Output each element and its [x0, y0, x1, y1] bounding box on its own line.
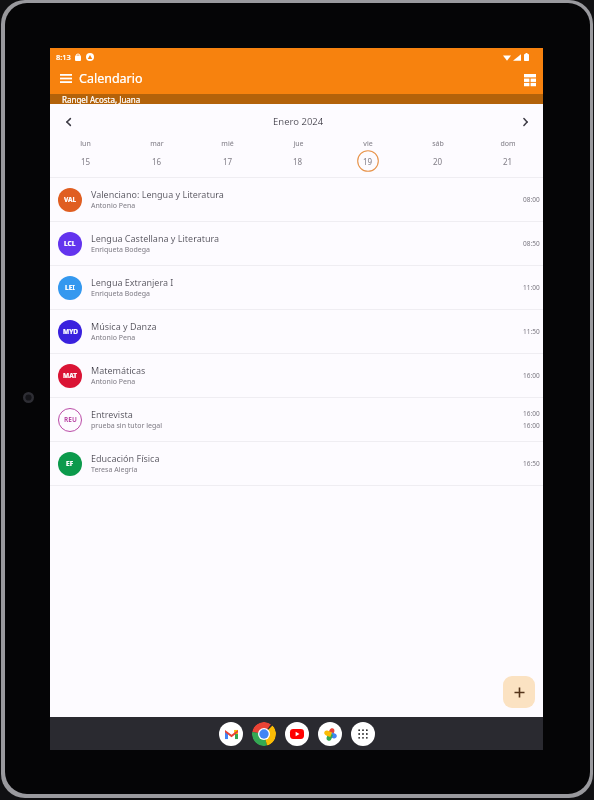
staticText: 21 — [503, 156, 513, 167]
staticText: 16:50 — [523, 459, 540, 468]
button[interactable]: Previous week — [57, 111, 79, 133]
staticText: Antonio Pena — [91, 201, 136, 211]
button[interactable]: All apps — [351, 722, 375, 746]
staticText: 19 — [363, 156, 373, 167]
button[interactable]: MYD — [50, 310, 543, 353]
staticText: Educación Física — [91, 452, 160, 464]
button[interactable]: sáb — [403, 104, 473, 178]
staticText: Matemáticas — [91, 364, 146, 376]
staticText: mar — [150, 139, 164, 149]
staticText: MYD — [63, 327, 78, 336]
staticText: 11:50 — [523, 327, 540, 336]
staticText: 11:00 — [523, 283, 540, 292]
button[interactable]: jue — [263, 104, 333, 178]
staticText: Calendario — [79, 70, 143, 87]
staticText: Antonio Pena — [91, 377, 136, 387]
staticText: Valenciano: Lengua y Literatura — [91, 188, 224, 200]
staticText: 08:00 — [523, 195, 540, 204]
staticText: EF — [66, 459, 74, 468]
button[interactable]: vie — [333, 104, 403, 178]
button[interactable]: Change view — [520, 70, 540, 90]
staticText: 20 — [433, 156, 443, 167]
button[interactable]: Open navigation menu — [57, 71, 75, 89]
staticText: sáb — [432, 139, 444, 149]
button[interactable]: mar — [121, 104, 192, 178]
staticText: 08:50 — [523, 239, 540, 248]
staticText: mié — [221, 139, 234, 149]
staticText: Enero 2024 — [273, 115, 324, 128]
staticText: REU — [64, 415, 77, 424]
staticText: 15 — [81, 156, 91, 167]
staticText: Enriqueta Bodega — [91, 289, 151, 299]
staticText: 18 — [293, 156, 303, 167]
button[interactable]: Next week — [514, 111, 536, 133]
staticText: Teresa Alegría — [91, 465, 138, 475]
staticText: Rangel Acosta, Juana — [62, 94, 141, 104]
staticText: 16:00 — [523, 421, 540, 430]
button[interactable]: lun — [50, 104, 121, 178]
staticText: 16 — [152, 156, 162, 167]
button[interactable]: REU — [50, 398, 543, 441]
button[interactable]: Add event — [503, 676, 535, 708]
button[interactable]: Chrome — [252, 722, 276, 746]
button[interactable]: Gmail — [219, 722, 243, 746]
staticText: Lengua Extranjera I — [91, 276, 174, 288]
staticText: MAT — [63, 371, 77, 380]
staticText: 17 — [223, 156, 233, 167]
staticText: prueba sin tutor legal — [91, 421, 162, 431]
staticText: VAL — [64, 195, 77, 204]
button[interactable]: EF — [50, 442, 543, 485]
button[interactable]: VAL — [50, 178, 543, 221]
button[interactable]: mié — [192, 104, 263, 178]
staticText: Entrevista — [91, 408, 133, 420]
staticText: Lengua Castellana y Literatura — [91, 232, 220, 244]
staticText: Música y Danza — [91, 320, 157, 332]
button[interactable]: LEI — [50, 266, 543, 309]
button[interactable]: Google Photos — [318, 722, 342, 746]
staticText: 8:13 — [56, 52, 71, 62]
staticText: Antonio Pena — [91, 333, 136, 343]
staticText: LCL — [64, 239, 76, 248]
button[interactable]: MAT — [50, 354, 543, 397]
button[interactable]: YouTube — [285, 722, 309, 746]
staticText: lun — [80, 139, 91, 149]
staticText: 16:00 — [523, 371, 540, 380]
staticText: jue — [293, 139, 304, 149]
staticText: vie — [363, 139, 373, 149]
button[interactable]: dom — [473, 104, 543, 178]
staticText: 16:00 — [523, 409, 540, 418]
staticText: dom — [500, 139, 516, 149]
button[interactable]: LCL — [50, 222, 543, 265]
staticText: LEI — [65, 283, 75, 292]
staticText: Enriqueta Bodega — [91, 245, 151, 255]
